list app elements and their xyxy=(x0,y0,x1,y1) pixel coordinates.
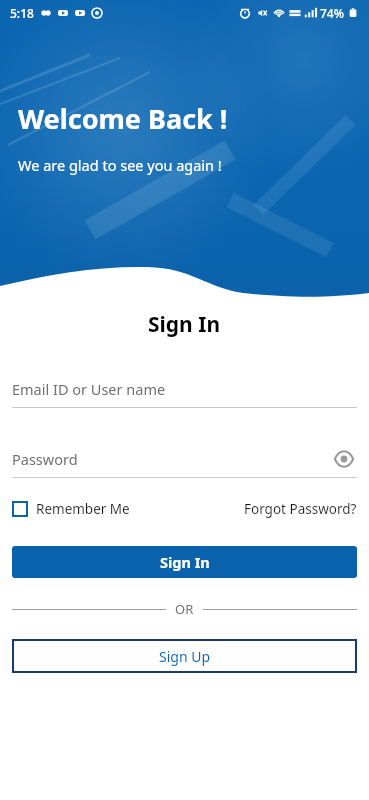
staticText: OR xyxy=(175,600,194,618)
staticText: Password xyxy=(12,449,78,469)
button[interactable]: Sign Up xyxy=(12,639,357,673)
staticText: 5:18 xyxy=(10,5,34,21)
staticText: Remember Me xyxy=(36,500,130,518)
button[interactable]: Show password xyxy=(331,446,357,472)
button[interactable]: Remember Me xyxy=(12,500,130,518)
staticText: Sign In xyxy=(148,310,221,339)
button[interactable]: Email ID or User name xyxy=(12,375,357,408)
staticText: Forgot Password? xyxy=(244,500,357,518)
staticText: Sign Up xyxy=(159,647,211,666)
staticText: Email ID or User name xyxy=(12,379,166,399)
staticText: We are glad to see you again ! xyxy=(18,155,222,175)
staticText: Sign In xyxy=(160,552,210,572)
button[interactable]: Sign In xyxy=(12,546,357,578)
staticText: Welcome Back ! xyxy=(18,100,228,137)
staticText: 74% xyxy=(320,5,344,21)
button[interactable]: Password xyxy=(12,445,357,473)
button[interactable]: Forgot Password? xyxy=(244,500,357,518)
